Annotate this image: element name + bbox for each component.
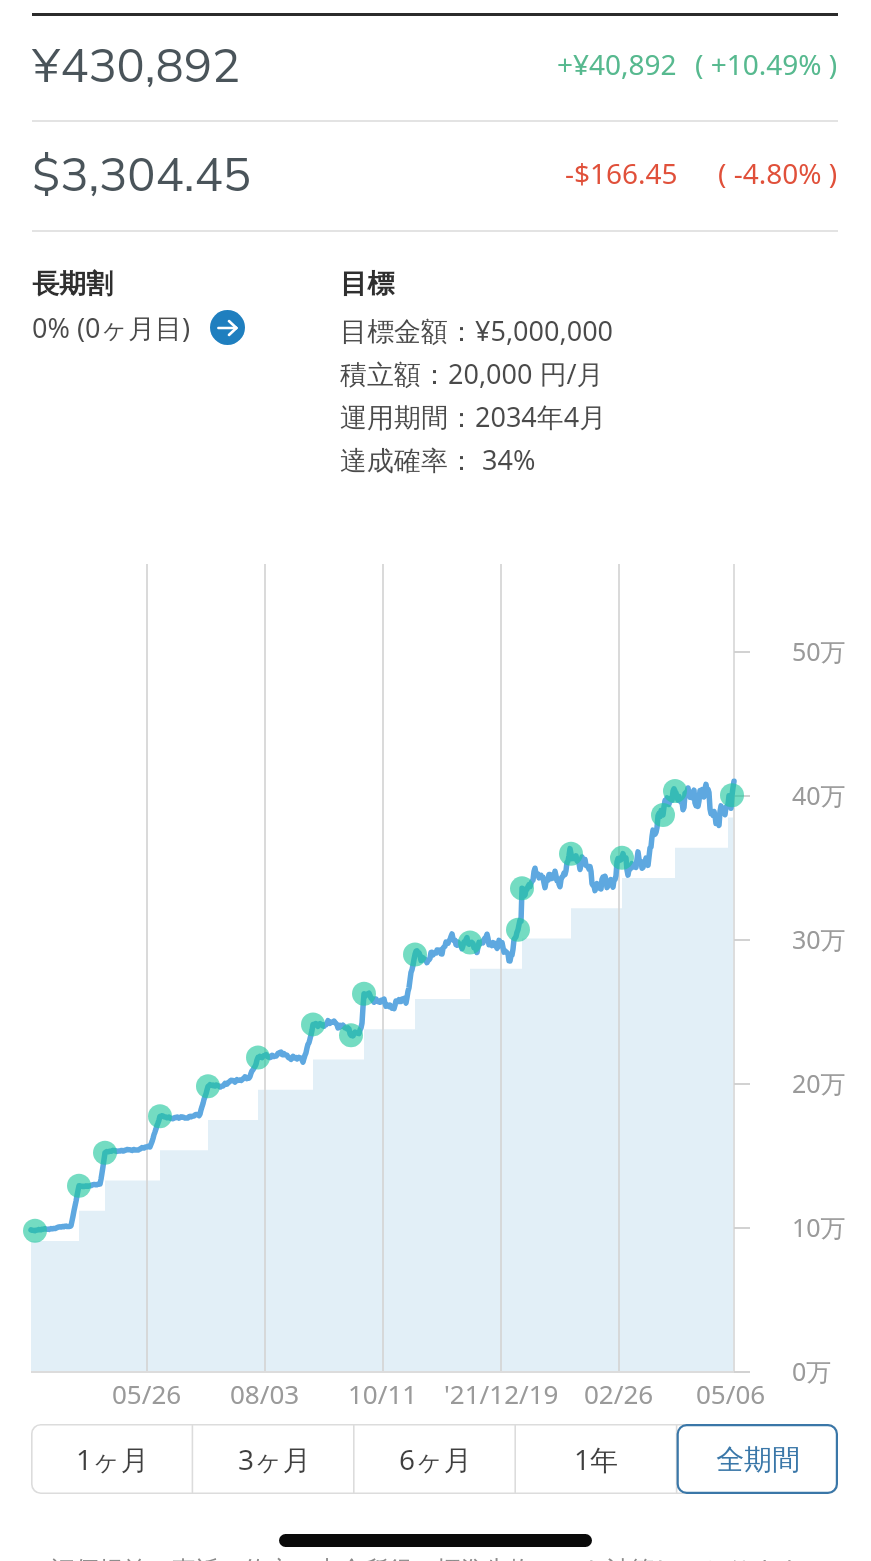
staticText: 1ヶ月	[76, 1440, 149, 1478]
staticText: 40万	[792, 778, 846, 812]
staticText: ( -4.80% )	[718, 154, 838, 192]
staticText: 05/26	[112, 1376, 182, 1411]
button[interactable]: 1ヶ月	[31, 1424, 193, 1494]
button[interactable]: $3,304.45	[32, 119, 838, 227]
staticText: 1年	[574, 1440, 619, 1478]
staticText: ※評価損益は直近の約定、出金所得、標準先物につき計算しております。	[31, 1552, 826, 1561]
staticText: ¥430,892	[32, 35, 241, 94]
staticText: 全期間	[716, 1442, 800, 1477]
button[interactable]: 3ヶ月	[193, 1424, 355, 1494]
staticText: 積立額：20,000 円/月	[340, 355, 604, 392]
staticText: 08/03	[230, 1376, 300, 1411]
staticText: 50万	[792, 634, 846, 668]
button[interactable]: ¥430,892	[32, 12, 838, 116]
staticText: 05/06	[696, 1376, 766, 1411]
staticText: -$166.45	[565, 154, 678, 192]
staticText: 3ヶ月	[238, 1440, 311, 1478]
staticText: 目標金額：¥5,000,000	[340, 312, 614, 349]
staticText: 10/11	[348, 1376, 418, 1411]
staticText: 0万	[792, 1354, 832, 1388]
staticText: 運用期間：2034年4月	[340, 398, 607, 435]
staticText: $3,304.45	[32, 144, 251, 203]
staticText: ( +10.49% )	[695, 45, 838, 83]
staticText: 長期割	[32, 267, 113, 301]
staticText: 達成確率： 34%	[340, 441, 536, 478]
staticText: 0% (0ヶ月目)	[32, 309, 191, 346]
staticText: 20万	[792, 1066, 846, 1100]
staticText: 6ヶ月	[399, 1440, 472, 1478]
staticText: +¥40,892	[557, 45, 677, 83]
staticText: '21/12/19	[444, 1376, 559, 1411]
button[interactable]: 6ヶ月	[355, 1424, 516, 1494]
staticText: 30万	[792, 922, 846, 956]
button[interactable]: 長期割の詳細	[210, 310, 245, 345]
button[interactable]: 全期間	[677, 1424, 838, 1494]
staticText: 目標	[340, 267, 394, 301]
staticText: 10万	[792, 1210, 846, 1244]
staticText: 02/26	[584, 1376, 654, 1411]
button[interactable]: 1年	[516, 1424, 677, 1494]
